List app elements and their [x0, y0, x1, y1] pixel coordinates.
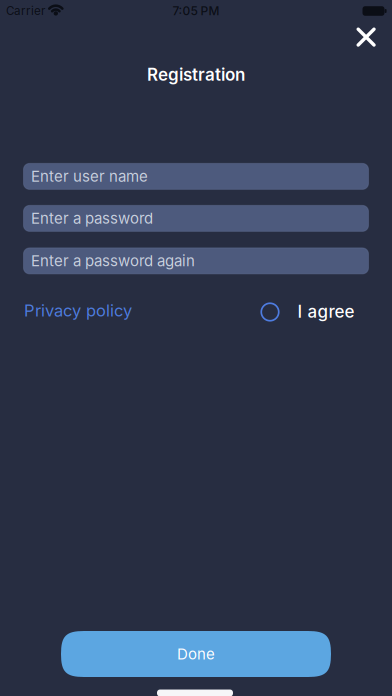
staticText: Privacy policy: [24, 300, 132, 320]
staticText: Done: [177, 645, 215, 663]
staticText: Enter user name: [31, 167, 148, 185]
staticText: I agree: [297, 301, 354, 322]
staticText: Enter a password again: [31, 252, 195, 270]
staticText: Carrier: [6, 4, 45, 18]
staticText: Enter a password: [31, 209, 153, 227]
staticText: 7:05 PM: [172, 4, 219, 18]
staticText: Registration: [147, 64, 245, 85]
